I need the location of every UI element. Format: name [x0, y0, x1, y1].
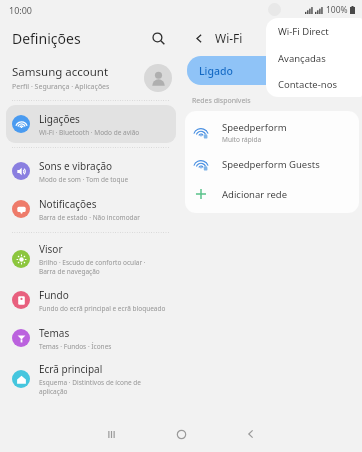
button[interactable]: Pesquisar: [146, 26, 170, 50]
staticText: Avançadas: [278, 52, 326, 65]
button[interactable]: Contacte-nos: [266, 71, 362, 97]
button[interactable]: Ecrã principal: [6, 357, 176, 401]
staticText: Muito rápida: [222, 135, 262, 144]
staticText: Esquema · Distintivos de ícone de aplica…: [39, 378, 142, 396]
button[interactable]: Speedperform: [185, 115, 359, 149]
staticText: Modo de som · Tom de toque: [39, 175, 129, 184]
staticText: Brilho · Escudo de conforto ocular · Bar…: [39, 258, 146, 276]
staticText: Adicionar rede: [222, 188, 288, 201]
staticText: Barra de estado · Não incomodar: [39, 213, 140, 222]
staticText: Ecrã principal: [39, 362, 103, 376]
button[interactable]: Voltar: [188, 27, 210, 49]
staticText: Fundo: [39, 288, 69, 302]
staticText: Speedperform: [222, 121, 287, 134]
button[interactable]: Sons e vibração: [6, 152, 176, 190]
button[interactable]: Notificações: [6, 190, 176, 228]
button[interactable]: Ligado: [187, 56, 357, 85]
staticText: 10:00: [9, 4, 33, 16]
button[interactable]: Avançadas: [266, 45, 362, 71]
staticText: Contacte-nos: [278, 78, 337, 91]
staticText: Wi-Fi · Bluetooth · Modo de avião: [39, 128, 140, 137]
staticText: Ligações: [39, 112, 80, 126]
button[interactable]: Temas: [6, 319, 176, 357]
button[interactable]: Speedperform Guests: [185, 149, 359, 179]
button[interactable]: Voltar: [216, 419, 286, 449]
button[interactable]: Samsung account: [0, 56, 182, 100]
staticText: Perfil · Segurança · Aplicações: [12, 82, 110, 92]
button[interactable]: Fundo: [6, 281, 176, 319]
staticText: Speedperform Guests: [222, 158, 320, 171]
button[interactable]: Visor: [6, 237, 176, 281]
staticText: Temas: [39, 326, 70, 340]
staticText: Wi-Fi: [215, 30, 243, 46]
staticText: Notificações: [39, 197, 97, 211]
button[interactable]: Ligações: [6, 105, 176, 143]
button[interactable]: Adicionar rede: [185, 179, 359, 209]
staticText: 100%: [326, 4, 348, 16]
button[interactable]: Aplicações recentes: [76, 419, 146, 449]
button[interactable]: Início: [146, 419, 216, 449]
staticText: Fundo do ecrã principal e ecrã bloqueado: [39, 304, 166, 313]
staticText: Visor: [39, 242, 63, 256]
staticText: Sons e vibração: [39, 159, 113, 173]
staticText: Redes disponíveis: [192, 96, 251, 106]
staticText: Wi-Fi Direct: [278, 25, 329, 38]
staticText: Samsung account: [12, 64, 109, 80]
button[interactable]: Wi-Fi Direct: [266, 18, 362, 44]
staticText: Definições: [12, 29, 81, 48]
staticText: Temas · Fundos · Ícones: [39, 342, 112, 351]
staticText: Ligado: [199, 64, 233, 78]
